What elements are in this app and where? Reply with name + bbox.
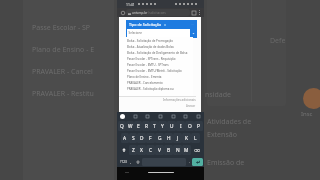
staticText: P [197, 123, 200, 130]
button[interactable]: PRAVALER - Cancelamento [127, 80, 193, 86]
staticText: ?123 [120, 160, 127, 164]
staticText: H [167, 135, 171, 142]
staticText: Bolsa - Solicitação de Prorrogação [127, 39, 173, 43]
staticText: J [177, 135, 179, 142]
button[interactable]: Tool 2 [158, 114, 163, 119]
staticText: Informações adicionais [163, 98, 196, 102]
button[interactable]: Voice input [134, 156, 141, 167]
button[interactable]: Tool 0 [133, 114, 138, 119]
staticText: nsidade [205, 90, 231, 100]
button[interactable]: Tabs [190, 9, 197, 16]
staticText: Bolsa - Solicitação de Desligamento de B… [127, 51, 188, 55]
staticText: ··· [191, 22, 194, 27]
button[interactable]: K [182, 133, 191, 143]
button[interactable]: H [164, 133, 173, 143]
button[interactable]: X [137, 145, 146, 155]
button[interactable]: Q [118, 121, 126, 131]
staticText: Y [161, 123, 164, 130]
button[interactable]: Tipo de Solicitação [126, 20, 197, 29]
button[interactable]: I [176, 121, 185, 131]
button[interactable]: A [121, 133, 129, 143]
staticText: T [153, 123, 156, 130]
staticText: Extensão [207, 130, 237, 140]
button[interactable]: Tool 5 [196, 114, 201, 119]
staticText: univesp.br [132, 11, 148, 15]
staticText: W [128, 123, 133, 130]
staticText: /solicitacoes [148, 11, 166, 15]
button[interactable]: More options [197, 10, 202, 15]
button[interactable]: Enter [192, 158, 203, 166]
button[interactable]: Plano de Ensino - Ementa [127, 74, 193, 80]
button[interactable]: S [129, 133, 137, 143]
staticText: Selecione [127, 31, 142, 35]
button[interactable]: Passe Escolar - EMTU/Metrô - Solicitação [127, 68, 193, 74]
staticText: Atividades de [207, 117, 252, 127]
staticText: Plano de Ensino - E [32, 45, 95, 55]
button[interactable]: O [185, 121, 194, 131]
button[interactable]: N [173, 145, 182, 155]
button[interactable]: Tool 1 [145, 114, 150, 119]
button[interactable]: C [146, 145, 155, 155]
button[interactable]: L [191, 133, 200, 143]
button[interactable]: P [194, 121, 203, 131]
button[interactable]: PRAVALER - Solicitação diploma ou reapro… [127, 86, 193, 92]
staticText: U [170, 123, 174, 130]
button[interactable]: W [126, 121, 134, 131]
staticText: Tipo de Solicitação [129, 22, 162, 27]
button[interactable]: U [167, 121, 176, 131]
staticText: M [184, 147, 189, 154]
button[interactable]: Reload [119, 9, 126, 16]
staticText: Insc [301, 110, 313, 118]
button[interactable]: M [182, 145, 191, 155]
staticText: I [180, 123, 182, 130]
button[interactable]: E [134, 121, 142, 131]
staticText: A [123, 135, 127, 142]
staticText: Passe Escolar - EMTU/Metrô - Solicitação [127, 69, 182, 73]
staticText: Anexar [186, 104, 196, 108]
button[interactable]: G [155, 133, 164, 143]
button[interactable]: F [146, 133, 155, 143]
button[interactable]: Bolsa - Solicitação de Prorrogação [127, 38, 193, 44]
staticText: O [188, 123, 192, 130]
button[interactable]: , [128, 156, 134, 167]
button[interactable]: Backspace [191, 144, 203, 156]
button[interactable]: Passe Escolar - EMTU - SPTrans [127, 62, 193, 68]
button[interactable]: Passe Escolar - SPTrans - Requisição con… [127, 56, 193, 62]
button[interactable]: . [187, 156, 192, 167]
staticText: PRAVALER - Cancelamento [127, 81, 163, 85]
button[interactable]: ?123 [118, 156, 128, 167]
staticText: L [194, 135, 197, 142]
button[interactable]: Z [129, 145, 137, 155]
button[interactable]: B [164, 145, 173, 155]
staticText: PRAVALER - Restitu [32, 89, 94, 99]
staticText: . [189, 159, 191, 164]
button[interactable]: Tool 3 [171, 114, 176, 119]
staticText: D [140, 135, 144, 142]
button[interactable]: Bolsa - Solicitação de Desligamento de B… [127, 50, 193, 56]
button[interactable]: D [137, 133, 146, 143]
staticText: E [137, 123, 140, 130]
staticText: Defe [270, 36, 286, 46]
button[interactable]: T [150, 121, 158, 131]
staticText: K [185, 135, 188, 142]
staticText: PRAVALER - Cancel [32, 67, 93, 77]
button[interactable]: Y [158, 121, 167, 131]
staticText: Passe Escolar - EMTU - SPTrans [127, 63, 169, 67]
staticText: G [158, 135, 162, 142]
button[interactable]: V [155, 145, 164, 155]
staticText: N [176, 147, 180, 154]
button[interactable]: univesp.br [126, 9, 190, 16]
button[interactable]: Selecione [127, 29, 196, 37]
button[interactable]: Shift [118, 144, 129, 156]
button[interactable]: Tool 4 [183, 114, 188, 119]
staticText: Plano de Ensino - Ementa [127, 75, 162, 79]
button[interactable]: Google [120, 114, 125, 119]
staticText: Passe Escolar - SPTrans - Requisição con… [127, 57, 193, 61]
staticText: S [132, 135, 135, 142]
staticText: Z [132, 147, 135, 154]
button[interactable]: J [173, 133, 182, 143]
staticText: X [140, 147, 143, 154]
button[interactable]: Bolsa - Atualização de dados Bolsa [127, 44, 193, 50]
button[interactable]: R [142, 121, 150, 131]
